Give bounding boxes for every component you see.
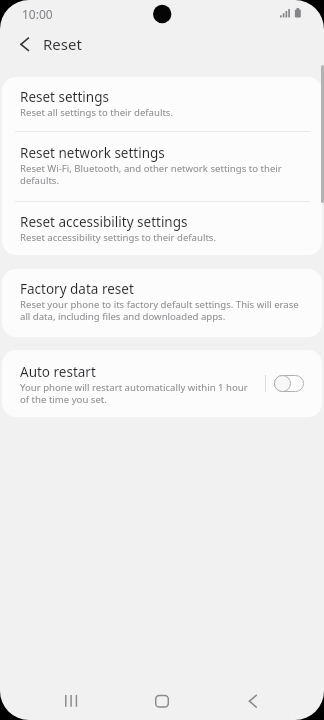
button[interactable]: Reset settings — [2, 77, 322, 131]
staticText: Factory data reset — [20, 280, 134, 298]
staticText: Reset settings — [20, 88, 109, 106]
staticText: Reset network settings — [20, 144, 165, 162]
button[interactable]: Home — [138, 677, 186, 720]
button[interactable]: Back — [229, 677, 277, 720]
button[interactable]: Navigate up — [6, 29, 36, 59]
button[interactable]: Auto restart — [268, 370, 309, 397]
staticText: Reset all settings to their defaults. — [20, 106, 174, 119]
button[interactable]: Recent apps — [47, 677, 95, 720]
staticText: Auto restart — [20, 363, 96, 381]
staticText: Your phone will restart automatically wi… — [20, 381, 252, 405]
button[interactable]: Auto restart — [20, 363, 252, 405]
button[interactable]: Factory data reset — [2, 269, 322, 337]
staticText: 10:00 — [22, 6, 53, 22]
button[interactable]: Reset network settings — [2, 132, 322, 201]
staticText: Reset your phone to its factory default … — [20, 298, 304, 322]
staticText: Reset accessibility settings to their de… — [20, 231, 217, 244]
staticText: Reset Wi-Fi, Bluetooth, and other networ… — [20, 162, 304, 186]
staticText: Reset accessibility settings — [20, 213, 188, 231]
button[interactable]: Reset accessibility settings — [2, 202, 322, 255]
staticText: Reset — [43, 34, 82, 54]
